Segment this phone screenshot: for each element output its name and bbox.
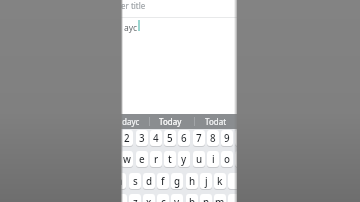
staticText: 7: [196, 132, 202, 145]
staticText: z: [133, 196, 138, 202]
button[interactable]: g: [171, 173, 183, 189]
button[interactable]: [228, 194, 237, 202]
button[interactable]: x: [143, 194, 155, 202]
button[interactable]: u: [193, 151, 205, 167]
button[interactable]: 7: [193, 130, 205, 146]
button[interactable]: d: [143, 173, 155, 189]
staticText: 2: [124, 132, 130, 145]
button[interactable]: 9: [221, 130, 233, 146]
staticText: er title: [121, 0, 146, 11]
button[interactable]: Todat: [205, 116, 227, 127]
button[interactable]: b: [186, 194, 198, 202]
button[interactable]: 3: [136, 130, 148, 146]
staticText: b: [189, 196, 196, 202]
staticText: k: [217, 175, 223, 188]
button[interactable]: v: [171, 194, 183, 202]
staticText: n: [203, 196, 210, 202]
staticText: t: [168, 153, 172, 166]
staticText: h: [189, 175, 196, 188]
button[interactable]: dayc: [122, 116, 140, 127]
staticText: 8: [210, 132, 216, 145]
staticText: w: [123, 153, 131, 166]
staticText: v: [174, 196, 180, 202]
staticText: j: [205, 175, 208, 188]
button[interactable]: 8: [207, 130, 219, 146]
staticText: 6: [181, 132, 187, 145]
button[interactable]: h: [186, 173, 198, 189]
button[interactable]: k: [214, 173, 226, 189]
button[interactable]: i: [207, 151, 219, 167]
button[interactable]: p: [235, 151, 237, 167]
button[interactable]: Today: [159, 116, 182, 127]
staticText: 3: [139, 132, 145, 145]
button[interactable]: j: [200, 173, 212, 189]
button[interactable]: s: [129, 173, 141, 189]
staticText: f: [161, 175, 165, 188]
button[interactable]: f: [157, 173, 169, 189]
button[interactable]: [228, 173, 237, 189]
staticText: g: [174, 175, 181, 188]
staticText: ayc: [124, 22, 138, 34]
staticText: s: [133, 175, 138, 188]
staticText: e: [139, 153, 145, 166]
button[interactable]: 4: [150, 130, 162, 146]
button[interactable]: y: [178, 151, 190, 167]
staticText: r: [154, 153, 159, 166]
button[interactable]: w: [121, 151, 133, 167]
staticText: a: [121, 175, 123, 188]
staticText: m: [215, 196, 225, 202]
button[interactable]: e: [136, 151, 148, 167]
staticText: 9: [224, 132, 230, 145]
button[interactable]: n: [200, 194, 212, 202]
button[interactable]: o: [221, 151, 233, 167]
staticText: c: [161, 196, 166, 202]
staticText: y: [181, 153, 187, 166]
staticText: u: [196, 153, 203, 166]
button[interactable]: 6: [178, 130, 190, 146]
button[interactable]: t: [164, 151, 176, 167]
button[interactable]: z: [129, 194, 141, 202]
button[interactable]: r: [150, 151, 162, 167]
staticText: o: [224, 153, 230, 166]
button[interactable]: a: [121, 173, 126, 189]
button[interactable]: 0: [235, 130, 237, 146]
staticText: 5: [167, 132, 173, 145]
staticText: x: [146, 196, 152, 202]
button[interactable]: c: [157, 194, 169, 202]
staticText: i: [212, 153, 215, 166]
button[interactable]: 5: [164, 130, 176, 146]
button[interactable]: [121, 194, 127, 202]
staticText: d: [146, 175, 153, 188]
staticText: 4: [153, 132, 159, 145]
button[interactable]: m: [214, 194, 226, 202]
button[interactable]: 2: [121, 130, 133, 146]
